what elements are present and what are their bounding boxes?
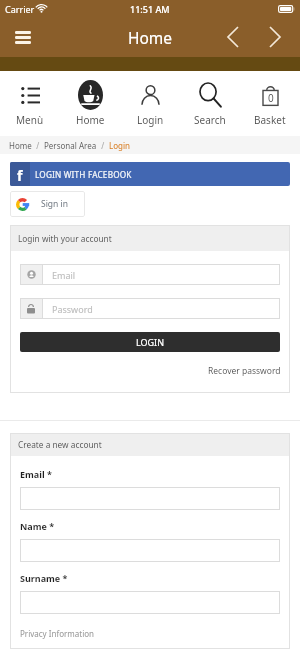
staticText: 0 [268,91,274,105]
staticText: LOGIN [136,336,165,348]
staticText: Search [194,113,226,127]
staticText: Login [109,140,130,151]
button[interactable]: Back [217,19,249,55]
staticText: 11:51 AM [130,3,170,15]
staticText: Home [128,27,173,48]
staticText: / [97,140,109,151]
button[interactable]: Search [180,71,240,135]
staticText: Login [137,113,164,127]
staticText: Login with your account [18,233,112,244]
button[interactable]: Personal Area [44,140,97,151]
button[interactable]: 0 [240,71,300,135]
staticText: Carrier [5,3,35,15]
button[interactable]: Recover password [208,365,281,377]
staticText: Email * [20,468,52,480]
staticText: Password [52,303,93,315]
button[interactable]: Forward [259,19,291,55]
staticText: Surname * [20,572,68,584]
staticText: Email [52,269,76,281]
staticText: Menù [16,113,44,127]
staticText: Basket [254,113,286,127]
staticText: LOGIN WITH FACEBOOK [35,169,132,180]
staticText: / [32,140,44,151]
staticText: Home [76,113,105,127]
staticText: f [17,166,23,185]
button[interactable]: f [10,162,290,186]
button[interactable]: Login [120,71,180,135]
button[interactable]: Menù [0,71,60,135]
button[interactable]: LOGIN [20,332,280,352]
button[interactable]: Home [9,140,32,151]
button[interactable]: Sign in [10,191,85,217]
button[interactable]: Privacy Information [20,628,95,639]
button[interactable]: Home [60,71,120,135]
staticText: Name * [20,520,55,532]
staticText: Create a new account [18,439,102,450]
staticText: Sign in [41,198,68,210]
button[interactable]: Menu [6,20,40,54]
